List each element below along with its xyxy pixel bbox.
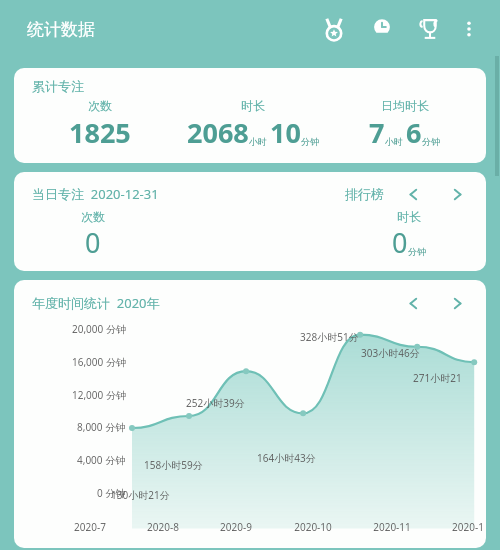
button[interactable]: Medal [316, 11, 352, 47]
staticText: 164小时43分 [257, 451, 316, 465]
staticText: 次数 [88, 98, 112, 113]
button[interactable]: Trophy [412, 11, 448, 47]
staticText: 271小时21 [413, 371, 462, 385]
staticText: 0 分钟 [97, 486, 126, 500]
staticText: 分钟 [422, 136, 440, 147]
staticText: 时长 [241, 98, 265, 113]
staticText: 4,000 分钟 [77, 453, 126, 467]
button[interactable]: 排行榜 [345, 186, 384, 202]
button[interactable]: 当日专注 2020-12-31 [14, 172, 486, 271]
staticText: 158小时59分 [144, 458, 203, 472]
staticText: 2068 [187, 114, 249, 151]
staticText: 20,000 分钟 [72, 322, 126, 336]
staticText: 分钟 [301, 136, 319, 147]
staticText: 次数 [81, 209, 105, 224]
button[interactable]: Previous year [400, 290, 426, 316]
staticText: 130小时21分 [111, 488, 170, 502]
button[interactable]: More options [454, 14, 484, 44]
button[interactable]: Previous day [400, 181, 426, 207]
staticText: 小时 [249, 136, 267, 147]
staticText: 0 [392, 224, 408, 261]
staticText: 2020-7 [74, 520, 106, 534]
staticText: 年度时间统计 2020年 [32, 294, 160, 312]
staticText: 1825 [69, 114, 131, 151]
staticText: 当日专注 2020-12-31 [32, 185, 159, 203]
staticText: 10 [270, 114, 301, 151]
staticText: 累计专注 [32, 78, 84, 94]
staticText: 2020-9 [220, 520, 252, 534]
button[interactable]: History [364, 11, 400, 47]
staticText: 2020-10 [294, 520, 332, 534]
staticText: 日均时长 [381, 98, 429, 113]
staticText: 303小时46分 [361, 346, 420, 360]
staticText: 小时 [385, 136, 403, 147]
button[interactable]: 年度时间统计 2020年 [14, 280, 486, 548]
staticText: 7 [369, 114, 385, 151]
staticText: 252小时39分 [186, 396, 245, 410]
button[interactable]: Next day [444, 181, 470, 207]
button[interactable]: Next year [444, 290, 470, 316]
staticText: 6 [406, 114, 422, 151]
staticText: 2020-8 [147, 520, 179, 534]
button[interactable]: 累计专注 [14, 68, 486, 163]
staticText: 8,000 分钟 [77, 420, 126, 434]
staticText: 分钟 [408, 246, 426, 257]
staticText: 2020-1 [452, 520, 484, 534]
staticText: 时长 [397, 209, 421, 224]
staticText: 328小时51分 [300, 330, 359, 344]
staticText: 12,000 分钟 [72, 388, 126, 402]
staticText: 16,000 分钟 [72, 355, 126, 369]
staticText: 0 [85, 224, 101, 261]
staticText: 2020-11 [373, 520, 411, 534]
staticText: 统计数据 [27, 19, 95, 40]
